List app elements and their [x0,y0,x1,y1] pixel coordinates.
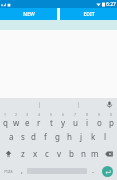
staticText: ?123 [4,169,13,174]
staticText: 2 [15,112,18,117]
button[interactable]: 0 [105,111,117,128]
staticText: a [9,131,14,142]
button[interactable]: NEW [0,8,57,20]
staticText: c [45,148,49,159]
staticText: i [86,117,89,128]
staticText: m [91,148,99,159]
button[interactable]: d [28,128,39,145]
staticText: p [109,117,114,128]
button[interactable]: c [41,145,53,162]
button[interactable]: 3 [22,111,33,128]
button[interactable]: m [89,145,101,162]
button[interactable]: ?123 [0,162,16,180]
button[interactable]: a [6,128,17,145]
staticText: l [104,131,107,142]
staticText: d [31,131,36,142]
staticText: r [37,117,41,128]
staticText: 7 [74,112,77,117]
button[interactable]: 4 [33,111,45,128]
button[interactable]: 9 [93,111,105,128]
button[interactable]: Space [27,167,87,175]
staticText: 4 [38,112,41,117]
staticText: v [57,148,62,159]
staticText: . [92,166,94,176]
staticText: z [21,148,25,159]
staticText: t [50,117,53,128]
button[interactable]: Shift [0,145,17,162]
button[interactable]: g [51,128,63,145]
button[interactable]: . [87,162,98,180]
staticText: 6 [62,112,65,117]
button[interactable]: s [17,128,28,145]
staticText: q [3,117,8,128]
button[interactable]: 8 [81,111,93,128]
button[interactable]: v [53,145,65,162]
button[interactable]: Voice input [105,100,114,109]
staticText: EDIT [83,11,95,18]
button[interactable]: 2 [11,111,22,128]
button[interactable]: 1 [0,111,11,128]
button[interactable]: f [39,128,51,145]
button[interactable]: EDIT [60,8,117,20]
staticText: h [67,131,72,142]
button[interactable]: x [29,145,41,162]
staticText: 8 [86,112,89,117]
button[interactable]: l [99,128,111,145]
button[interactable]: j [75,128,87,145]
button[interactable] [79,98,117,111]
staticText: e [25,117,30,128]
staticText: 6:27 [106,1,116,8]
staticText: 0 [110,112,113,117]
staticText: f [44,131,47,142]
button[interactable]: 6 [57,111,69,128]
button[interactable]: 7 [69,111,81,128]
staticText: u [73,117,78,128]
button[interactable]: k [87,128,99,145]
staticText: s [21,131,25,142]
staticText: j [80,131,83,142]
staticText: n [81,148,86,159]
staticText: k [91,131,96,142]
button[interactable]: Enter [98,162,117,180]
staticText: b [69,148,74,159]
button[interactable]: Backspace [101,145,117,162]
button[interactable]: n [77,145,89,162]
staticText: g [55,131,60,142]
staticText: 1 [4,112,7,117]
staticText: o [97,117,102,128]
staticText: 3 [26,112,29,117]
button[interactable]: b [65,145,77,162]
button[interactable]: , [16,162,27,180]
button[interactable]: z [17,145,29,162]
button[interactable]: 5 [45,111,57,128]
staticText: 9 [98,112,101,117]
staticText: 5 [50,112,53,117]
staticText: , [21,166,23,176]
staticText: w [13,117,20,128]
staticText: x [33,148,38,159]
staticText: NEW [23,11,35,18]
button[interactable]: h [63,128,75,145]
staticText: y [61,117,66,128]
